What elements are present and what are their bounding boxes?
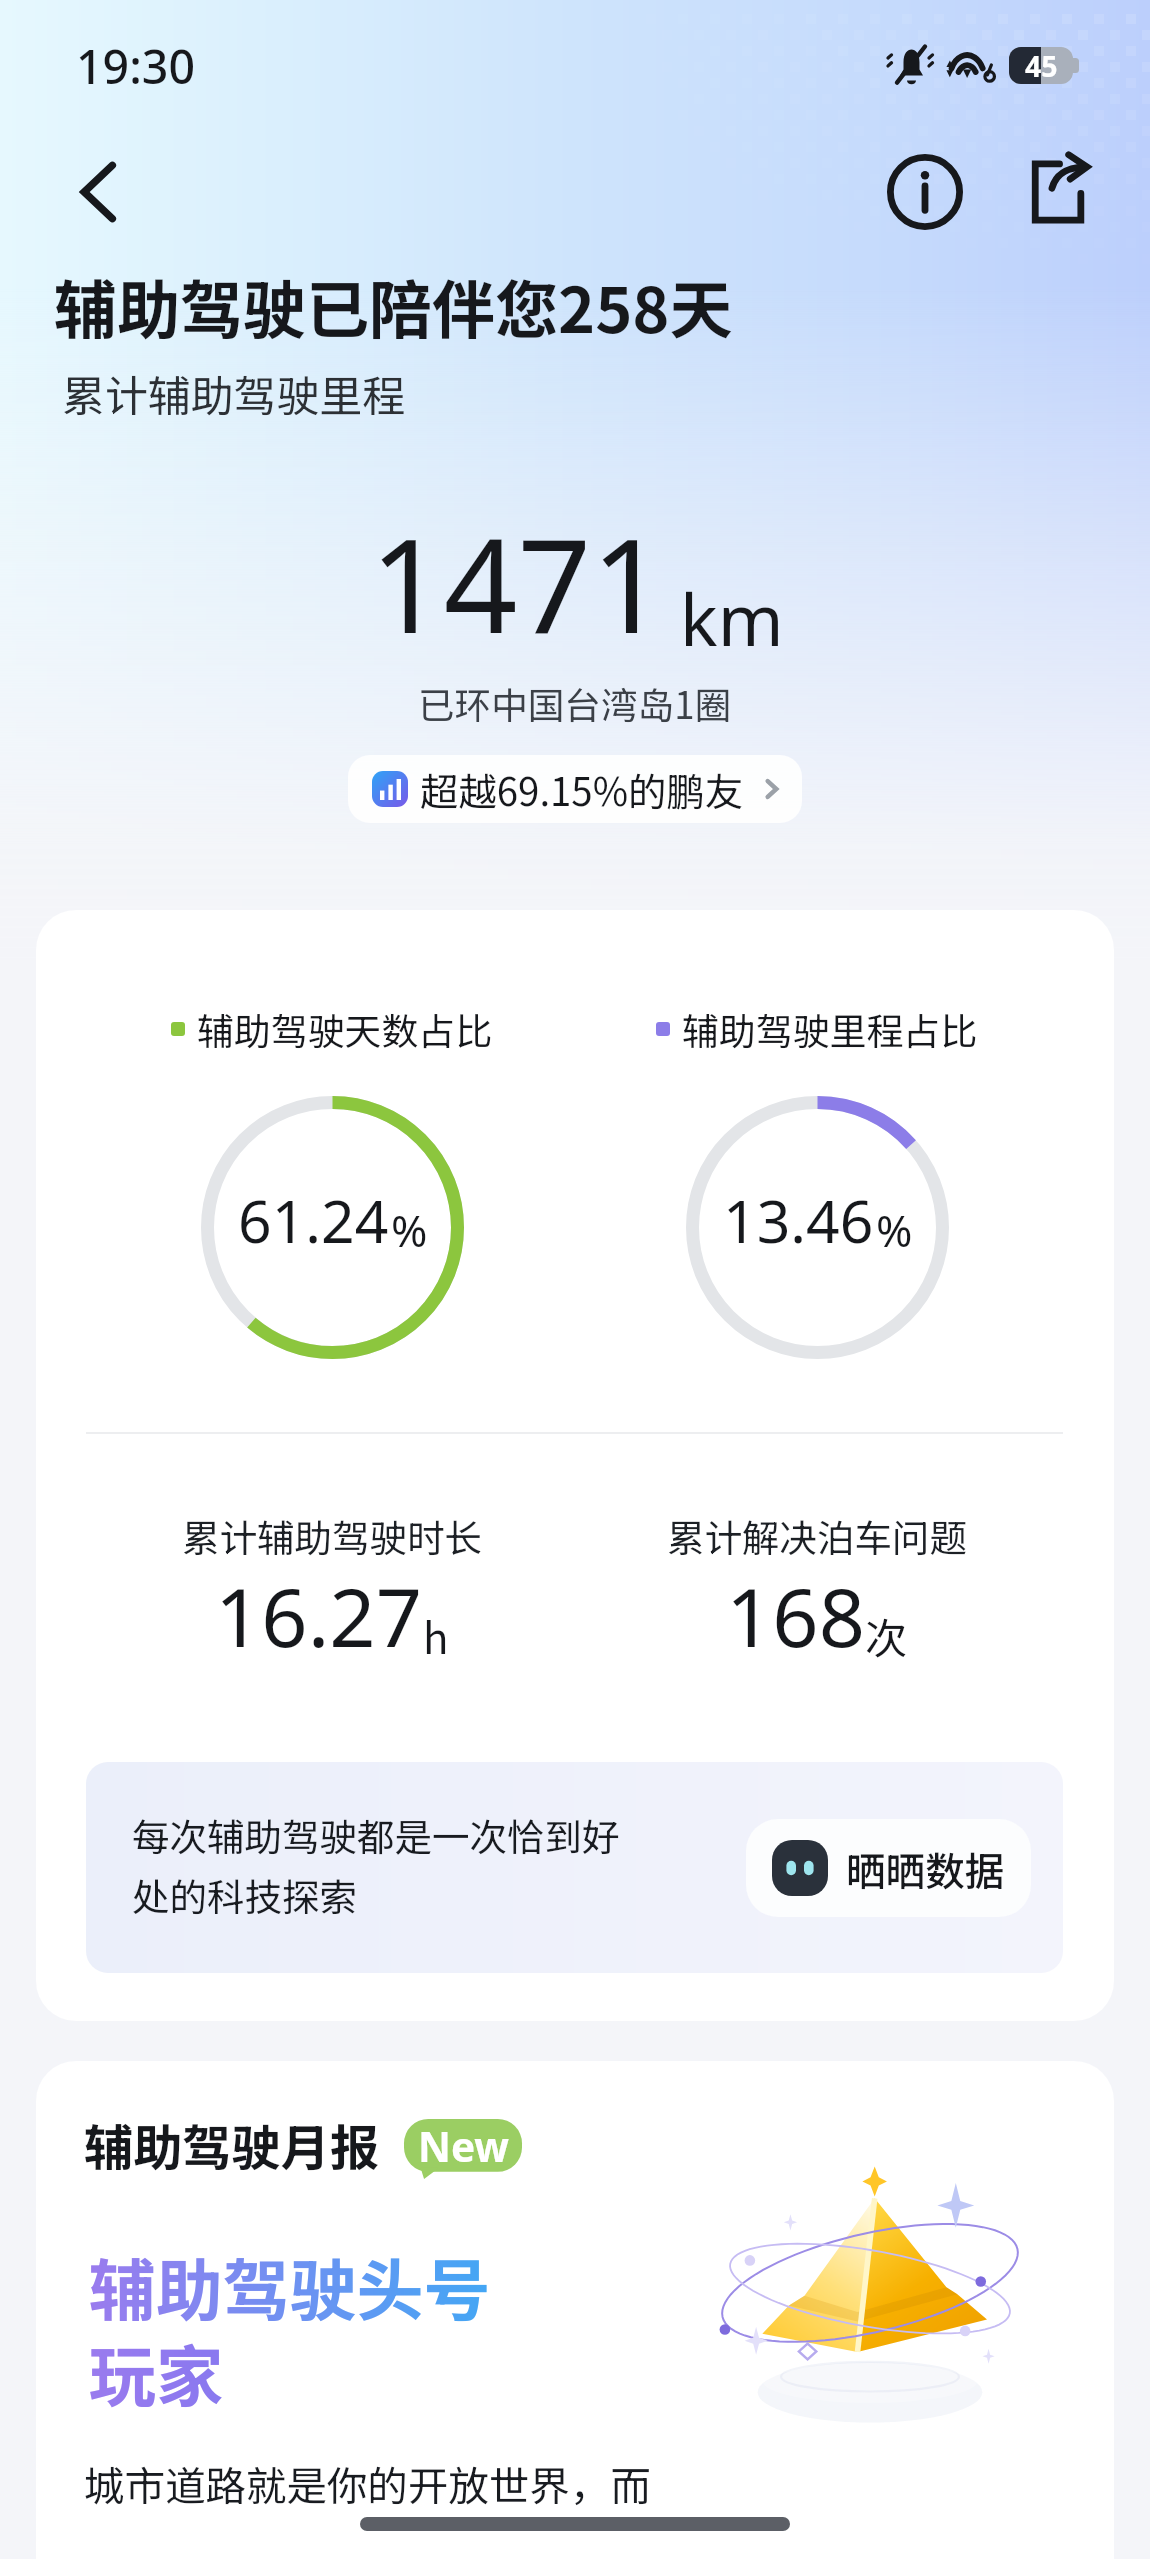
staticText: 辅助驾驶里程占比: [682, 1002, 978, 1055]
staticText: New: [418, 2119, 509, 2174]
staticText: 辅助驾驶头号: [89, 2237, 491, 2334]
button[interactable]: 超越69.15%的鹏友: [348, 755, 802, 823]
staticText: 辅助驾驶月报: [84, 2109, 380, 2180]
staticText: 处的科技探索: [132, 1867, 357, 1921]
staticText: %: [876, 1200, 913, 1260]
staticText: 超越69.15%的鹏友: [420, 761, 744, 817]
staticText: 已环中国台湾岛1圈: [418, 677, 732, 730]
staticText: 1471: [370, 495, 666, 671]
staticText: 累计辅助驾驶时长: [182, 1508, 482, 1562]
staticText: 晒晒数据: [846, 1840, 1005, 1897]
staticText: 168: [726, 1560, 865, 1670]
staticText: 61.24: [238, 1180, 389, 1260]
staticText: 累计解决泊车问题: [667, 1508, 967, 1562]
staticText: 次: [865, 1605, 908, 1666]
staticText: 城市道路就是你的开放世界，而: [84, 2454, 651, 2513]
button[interactable]: Info: [860, 127, 990, 257]
staticText: 45: [1025, 47, 1058, 84]
staticText: 辅助驾驶已陪伴您258天: [54, 260, 733, 351]
staticText: 累计辅助驾驶里程: [62, 362, 406, 424]
button[interactable]: Share: [990, 127, 1120, 257]
staticText: 每次辅助驾驶都是一次恰到好: [132, 1807, 620, 1861]
staticText: 19:30: [76, 34, 196, 97]
staticText: km: [680, 571, 784, 667]
staticText: h: [423, 1605, 449, 1666]
staticText: 玩家: [89, 2323, 223, 2420]
staticText: 13.46: [723, 1180, 874, 1260]
staticText: 16.27: [215, 1560, 423, 1670]
staticText: 辅助驾驶天数占比: [197, 1002, 493, 1055]
button[interactable]: Back: [34, 127, 164, 257]
button[interactable]: 晒晒数据: [746, 1819, 1031, 1917]
staticText: %: [391, 1200, 428, 1260]
